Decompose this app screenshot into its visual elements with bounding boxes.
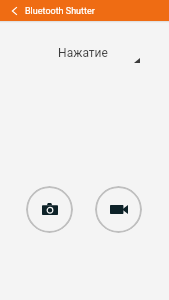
button[interactable]: Record video bbox=[95, 186, 142, 233]
button[interactable]: Back bbox=[0, 0, 25, 21]
staticText: Нажатие bbox=[58, 46, 108, 60]
staticText: Bluetooth Shutter bbox=[25, 6, 95, 17]
button[interactable]: Нажатие bbox=[0, 40, 169, 64]
button[interactable]: Take photo bbox=[26, 186, 73, 233]
